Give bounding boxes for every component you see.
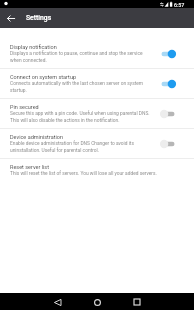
button[interactable]: Switch off	[155, 136, 181, 152]
staticText: Secure this app with a pin code. Useful …	[10, 111, 155, 123]
staticText: This will reset the list of servers. You…	[10, 171, 157, 177]
staticText: Reset server list	[10, 164, 49, 170]
button[interactable]: Back	[0, 8, 22, 28]
button[interactable]: Home	[90, 295, 104, 309]
button[interactable]: Reset server list	[0, 159, 194, 182]
button[interactable]: Pin secured	[0, 99, 194, 128]
staticText: Enable device administration for DNS Cha…	[10, 141, 155, 153]
button[interactable]: Device administration	[0, 129, 194, 158]
staticText: Device administration	[10, 134, 63, 140]
button[interactable]: Recent apps	[130, 295, 144, 309]
button[interactable]: Display notification	[0, 39, 194, 68]
button[interactable]: Switch on	[155, 46, 181, 62]
staticText: 6:57	[174, 2, 185, 8]
staticText: Connect on system startup	[10, 74, 77, 80]
button[interactable]: Switch off	[155, 106, 181, 122]
button[interactable]: Back	[50, 295, 64, 309]
staticText: Connects automatically with the last cho…	[10, 81, 155, 93]
staticText: Pin secured	[10, 104, 39, 110]
staticText: Settings	[26, 14, 52, 22]
staticText: Display notification	[10, 44, 57, 50]
button[interactable]: Switch on	[155, 76, 181, 92]
button[interactable]: Connect on system startup	[0, 69, 194, 98]
staticText: Displays a notification to pause, contin…	[10, 51, 155, 63]
